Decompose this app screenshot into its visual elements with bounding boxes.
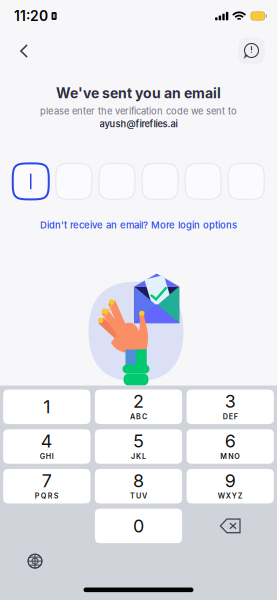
staticText: MNO [220, 452, 240, 460]
button[interactable]: Code digit 4 [142, 163, 178, 199]
button[interactable]: 8 [95, 469, 182, 503]
button[interactable]: Code digit 5 [185, 163, 221, 199]
button[interactable]: 9 [187, 469, 274, 503]
staticText: 1 [43, 396, 50, 417]
staticText: We've sent you an email [56, 85, 221, 101]
button[interactable]: 2 [95, 389, 182, 424]
staticText: 11:20 [14, 8, 48, 24]
staticText: 6 [225, 430, 236, 452]
staticText: 5 [133, 430, 144, 452]
button[interactable]: 1 [3, 389, 90, 424]
button[interactable]: 3 [187, 389, 274, 424]
button[interactable]: Code digit 1 [13, 163, 49, 199]
staticText: 7 [42, 470, 52, 491]
button[interactable]: Help [238, 37, 265, 64]
staticText: TUV [130, 492, 147, 500]
button[interactable]: Code digit 2 [56, 163, 92, 199]
staticText: WXYZ [218, 492, 243, 500]
staticText: 2 [133, 391, 144, 412]
button[interactable]: Didn't receive an email? More login opti… [32, 214, 245, 236]
staticText: 0 [133, 515, 144, 536]
staticText: ABC [130, 412, 147, 421]
staticText: ayush@fireflies.ai [99, 118, 177, 129]
button[interactable]: Next keyboard [20, 548, 50, 574]
staticText: please enter the verification code we se… [40, 105, 237, 116]
button[interactable]: 7 [3, 469, 90, 503]
staticText: GHI [40, 452, 54, 460]
staticText: JKL [131, 452, 146, 460]
button[interactable]: 6 [187, 429, 274, 464]
button[interactable]: Delete [187, 509, 274, 543]
staticText: DEF [223, 412, 238, 421]
button[interactable]: Back [7, 34, 41, 68]
staticText: 9 [225, 470, 236, 491]
staticText: Didn't receive an email? More login opti… [40, 219, 237, 231]
staticText: PQRS [35, 492, 59, 500]
button[interactable]: Code digit 3 [99, 163, 135, 199]
button[interactable]: 0 [95, 509, 182, 543]
button[interactable]: 4 [3, 429, 90, 464]
staticText: 3 [225, 391, 236, 412]
button[interactable]: Code digit 6 [228, 163, 264, 199]
button[interactable]: 5 [95, 429, 182, 464]
staticText: 4 [41, 430, 53, 452]
staticText: 8 [133, 470, 144, 491]
